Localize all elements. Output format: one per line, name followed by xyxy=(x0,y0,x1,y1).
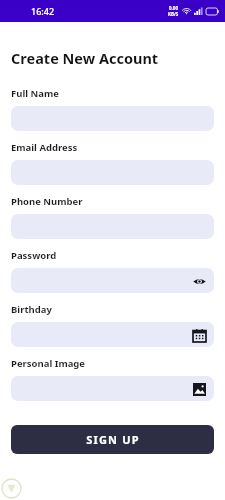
staticText: Email Address xyxy=(11,141,78,154)
button[interactable]: Pick image xyxy=(191,381,207,397)
button[interactable]: Pick image xyxy=(11,376,214,401)
staticText: KB/S xyxy=(168,11,179,17)
staticText: SIGN UP xyxy=(86,432,140,447)
button[interactable]: Show password xyxy=(191,273,207,289)
button[interactable]: Show password xyxy=(11,268,214,293)
button[interactable]: Pick date xyxy=(11,322,214,347)
staticText: Personal Image xyxy=(11,357,86,370)
staticText: Create New Account xyxy=(11,48,159,68)
button[interactable]: SIGN UP xyxy=(11,425,214,454)
staticText: 0.00 xyxy=(169,5,178,11)
staticText: Phone Number xyxy=(11,195,83,208)
button[interactable]: Pick date xyxy=(191,327,207,343)
staticText: Password xyxy=(11,249,57,262)
staticText: Birthday xyxy=(11,303,52,316)
staticText: Full Name xyxy=(11,87,59,100)
staticText: 16:42 xyxy=(31,5,55,17)
